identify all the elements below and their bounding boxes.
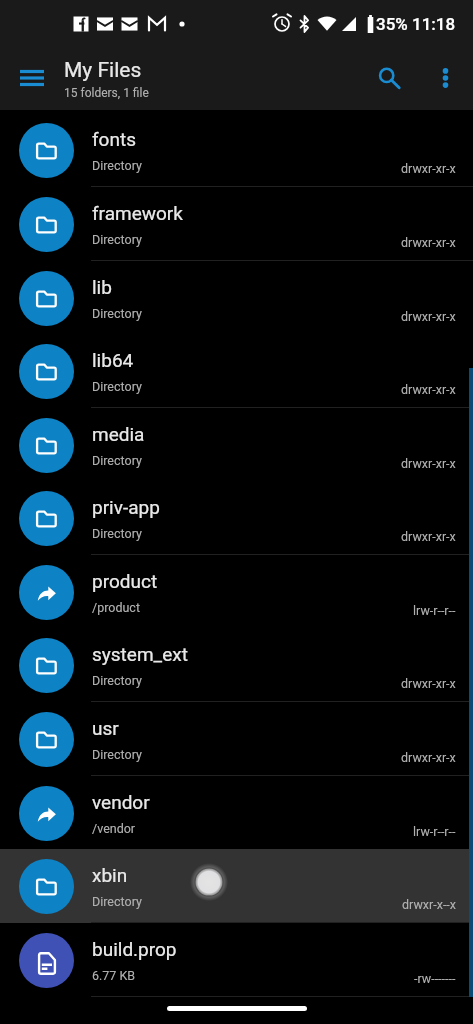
staticText: Directory (92, 526, 142, 541)
staticText: lrw-r--r-- (413, 824, 456, 839)
staticText: drwxr-xr-x (401, 161, 456, 176)
staticText: drwxr-x--x (402, 897, 456, 912)
staticText: lib64 (92, 349, 134, 371)
button[interactable]: xbin (0, 849, 473, 923)
staticText: system_ext (92, 643, 188, 665)
staticText: lrw-r--r-- (413, 603, 456, 618)
button[interactable]: usr (0, 702, 473, 776)
staticText: framework (92, 202, 183, 224)
staticText: usr (92, 717, 119, 739)
staticText: Directory (92, 379, 142, 394)
staticText: 6.77 KB (92, 968, 136, 983)
button[interactable]: lib (0, 261, 473, 335)
button[interactable]: media (0, 408, 473, 482)
staticText: drwxr-xr-x (401, 382, 456, 397)
staticText: Directory (92, 232, 142, 247)
staticText: drwxr-xr-x (401, 235, 456, 250)
staticText: Directory (92, 158, 142, 173)
staticText: 35% 11:18 (376, 14, 456, 34)
button[interactable]: More options (421, 54, 469, 102)
staticText: drwxr-xr-x (401, 750, 456, 765)
staticText: drwxr-xr-x (401, 529, 456, 544)
staticText: 15 folders, 1 file (64, 86, 149, 100)
staticText: Directory (92, 747, 142, 762)
staticText: /vendor (92, 821, 136, 836)
staticText: drwxr-xr-x (401, 676, 456, 691)
button[interactable]: product (0, 555, 473, 629)
button[interactable]: framework (0, 187, 473, 261)
staticText: media (92, 423, 145, 445)
staticText: Directory (92, 673, 142, 688)
staticText: build.prop (92, 938, 177, 960)
button[interactable]: Open navigation drawer (8, 54, 56, 102)
staticText: fonts (92, 128, 136, 150)
staticText: vendor (92, 791, 150, 813)
staticText: priv-app (92, 496, 160, 518)
staticText: Directory (92, 453, 142, 468)
button[interactable]: build.prop (0, 923, 473, 997)
staticText: drwxr-xr-x (401, 309, 456, 324)
staticText: /product (92, 600, 140, 615)
staticText: drwxr-xr-x (401, 456, 456, 471)
button[interactable]: Search (363, 52, 411, 100)
button[interactable]: priv-app (0, 481, 473, 555)
button[interactable]: lib64 (0, 334, 473, 408)
button[interactable]: vendor (0, 776, 473, 850)
staticText: -rw------- (414, 971, 456, 986)
staticText: Directory (92, 306, 142, 321)
button[interactable]: fonts (0, 113, 473, 187)
button[interactable]: system_ext (0, 628, 473, 702)
staticText: xbin (92, 864, 128, 886)
staticText: lib (92, 276, 112, 298)
staticText: Directory (92, 894, 142, 909)
staticText: product (92, 570, 158, 592)
staticText: My Files (64, 58, 142, 83)
